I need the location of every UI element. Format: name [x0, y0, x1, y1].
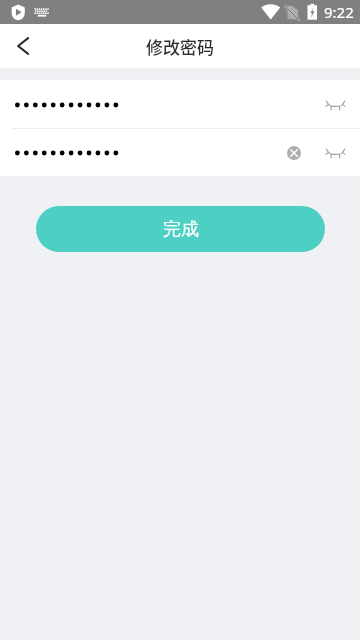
button[interactable]: Show password [0, 80, 360, 128]
staticText: 修改密码 [146, 34, 214, 59]
button[interactable]: Clear text [280, 132, 318, 172]
staticText: 9:22 [324, 2, 354, 22]
button[interactable]: Show password [318, 84, 353, 124]
button[interactable]: Back [0, 24, 46, 68]
staticText: 完成 [163, 218, 199, 241]
button[interactable]: 完成 [36, 206, 325, 252]
button[interactable]: Clear text [0, 128, 360, 176]
button[interactable]: Show password [318, 132, 353, 172]
